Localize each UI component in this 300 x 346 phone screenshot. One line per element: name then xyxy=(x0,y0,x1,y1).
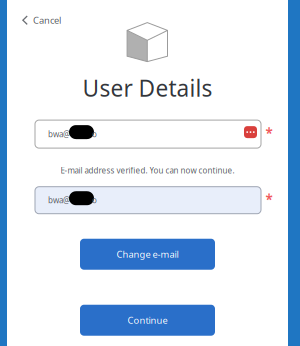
staticText: Continue xyxy=(127,314,167,326)
staticText: * xyxy=(265,190,272,208)
button[interactable]: Cancel xyxy=(7,0,69,26)
staticText: E-mail address verified. You can now con… xyxy=(60,165,234,176)
staticText: bwa@ xyxy=(48,129,70,139)
staticText: User Details xyxy=(82,73,212,103)
button[interactable]: Change e-mail xyxy=(80,239,215,270)
staticText: * xyxy=(265,124,272,142)
staticText: Cancel xyxy=(33,14,61,26)
staticText: bwa@ xyxy=(48,195,70,205)
staticText: Change e-mail xyxy=(116,248,178,260)
button[interactable]: More options xyxy=(244,128,257,140)
staticText: o xyxy=(92,129,97,139)
staticText: o xyxy=(92,195,97,205)
button[interactable]: Continue xyxy=(80,305,215,336)
